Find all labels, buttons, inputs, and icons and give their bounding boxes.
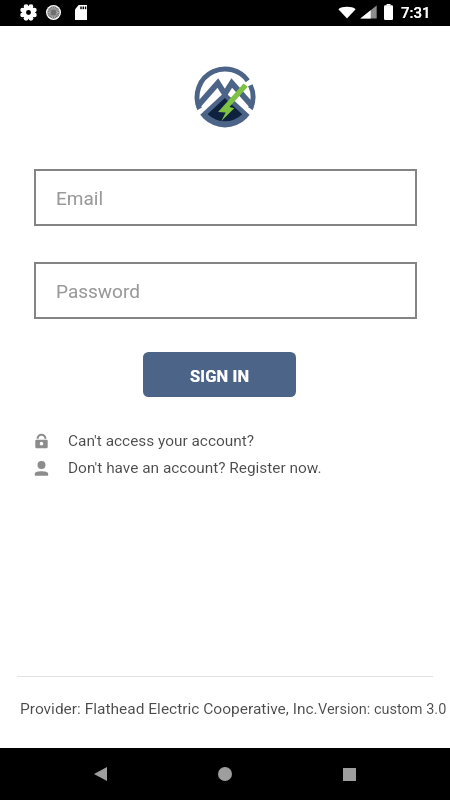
button[interactable]: Password xyxy=(34,262,417,319)
button[interactable]: Email xyxy=(34,169,417,226)
button[interactable]: SIGN IN xyxy=(143,352,296,397)
staticText: Version: custom 3.0 xyxy=(318,701,447,718)
staticText: Don't have an account? Register now. xyxy=(68,459,322,477)
button[interactable]: Home xyxy=(205,754,245,794)
staticText: Provider: Flathead Electric Cooperative,… xyxy=(20,700,318,718)
button[interactable]: Don't have an account? Register now. xyxy=(33,456,450,480)
button[interactable]: Recent apps xyxy=(329,754,369,794)
button[interactable]: Back xyxy=(80,754,120,794)
staticText: Password xyxy=(56,280,140,302)
staticText: Can't access your account? xyxy=(68,432,255,450)
button[interactable]: Can't access your account? xyxy=(33,429,450,453)
staticText: SIGN IN xyxy=(190,367,250,386)
staticText: Email xyxy=(56,187,104,209)
staticText: 7:31 xyxy=(401,4,431,22)
